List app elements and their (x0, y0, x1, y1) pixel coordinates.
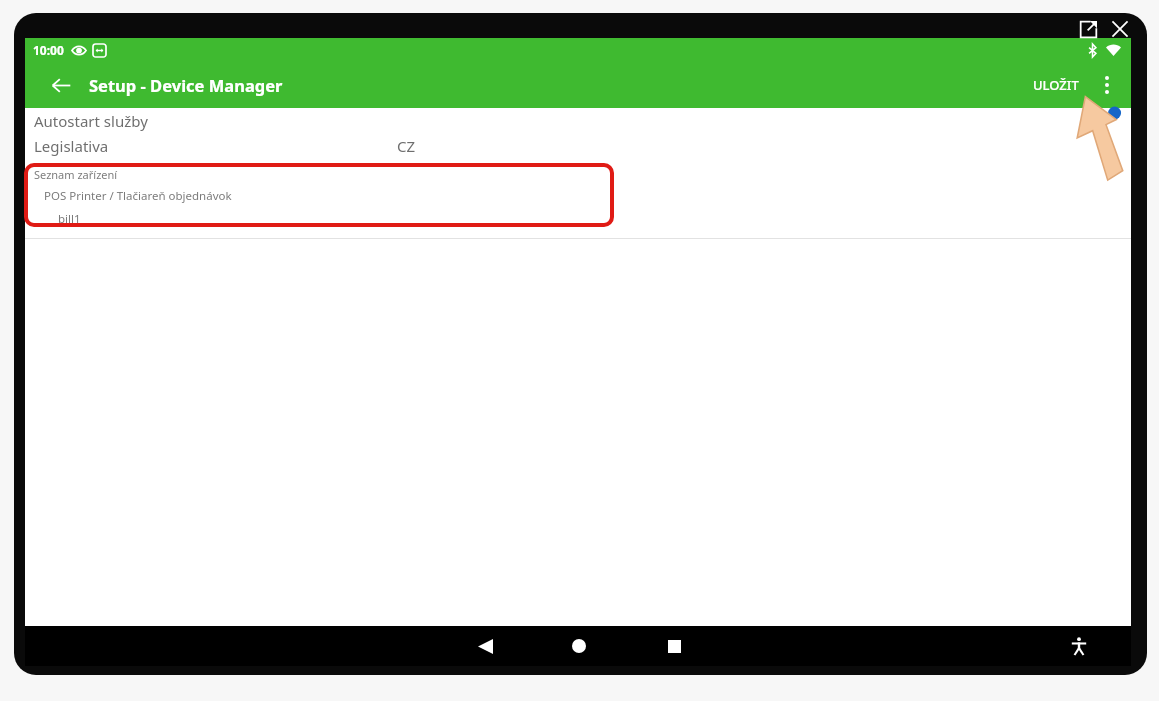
button[interactable]: Accessibility (1057, 626, 1101, 666)
staticText: Legislativa (34, 136, 109, 156)
staticText: 10:00 (33, 42, 64, 58)
button[interactable]: Autostart služby (25, 108, 1131, 133)
button[interactable]: Back (461, 626, 509, 666)
button[interactable]: Back (41, 65, 81, 105)
staticText: POS Printer / Tlačiareň objednávok (44, 188, 232, 204)
staticText: bill1 (58, 211, 81, 227)
button[interactable]: Legislativa (25, 133, 1131, 158)
button[interactable]: Home (555, 626, 603, 666)
button[interactable]: Recent apps (650, 626, 698, 666)
button[interactable]: More options (1089, 67, 1125, 103)
button[interactable]: Seznam zařízení (25, 166, 1131, 227)
button[interactable]: Open in new window (1075, 16, 1101, 42)
button[interactable]: Close (1107, 16, 1133, 42)
staticText: Setup - Device Manager (89, 74, 283, 96)
staticText: Seznam zařízení (34, 167, 118, 182)
staticText: CZ (397, 136, 416, 156)
button[interactable]: ULOŽIT (1023, 68, 1089, 102)
staticText: Autostart služby (34, 111, 148, 131)
staticText: ULOŽIT (1033, 76, 1079, 94)
